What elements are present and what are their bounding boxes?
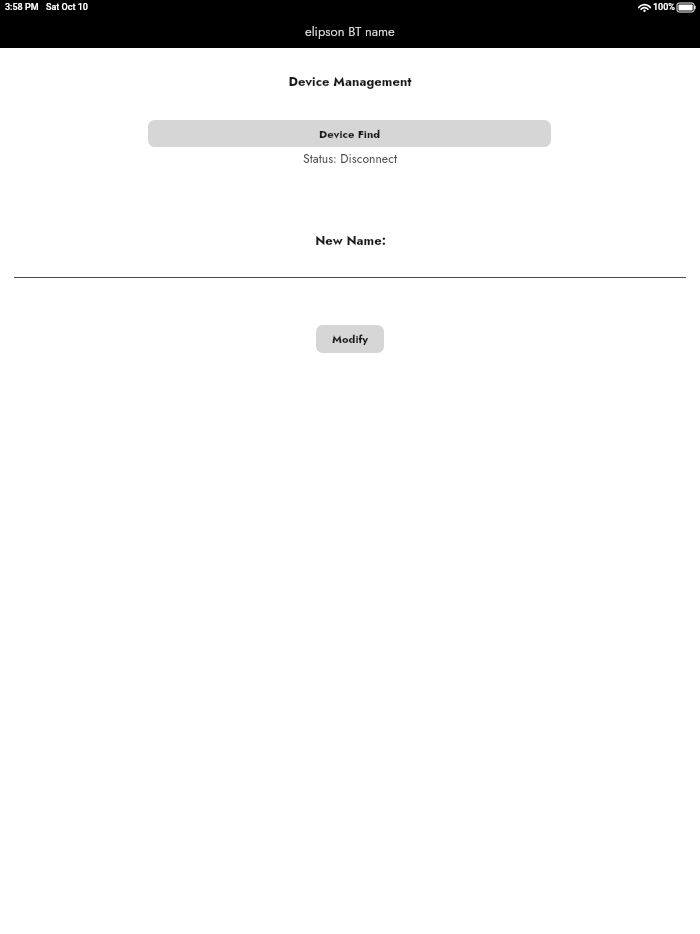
staticText: Device Find — [319, 126, 381, 142]
other: Wi-Fi — [639, 3, 650, 12]
staticText: Modify — [332, 331, 369, 347]
staticText: Status: Disconnect — [303, 150, 397, 167]
staticText: New Name: — [315, 231, 386, 249]
staticText: Device Management — [288, 72, 412, 90]
button[interactable]: Modify — [316, 325, 384, 353]
staticText: 3:58 PM — [5, 2, 39, 13]
staticText: elipson BT name — [305, 22, 395, 41]
other: Battery full — [677, 3, 696, 12]
staticText: Sat Oct 10 — [46, 2, 88, 13]
staticText: 100% — [653, 2, 675, 13]
button[interactable]: Device Find — [148, 120, 551, 147]
